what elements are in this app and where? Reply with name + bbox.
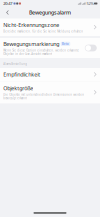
staticText: Empfindlichkeit	[3, 71, 40, 78]
button[interactable]: Nicht-Erkennungszone	[0, 18, 100, 36]
button[interactable]: Empfindlichkeit	[0, 68, 100, 81]
staticText: Nicht-Erkennungszone	[3, 21, 59, 28]
staticText: Die Objekte mit unterschiedlichen Dimens…	[3, 93, 84, 100]
button[interactable]: Objektgröße	[0, 81, 100, 103]
button[interactable]: Bewegungsmarkierung	[0, 38, 100, 58]
staticText: 20:47	[3, 1, 12, 6]
staticText: Bereiche markieren, für die Sie keine Me…	[3, 30, 83, 33]
staticText: Objektgröße	[3, 85, 33, 92]
staticText: 52%	[86, 1, 93, 6]
button[interactable]: Zurück	[2, 7, 13, 18]
staticText: Bewegungsmarkierung	[3, 40, 59, 47]
staticText: Beta	[62, 42, 69, 46]
staticText: Alarm-Einstellung	[3, 62, 27, 66]
staticText: Wenn Sie diese Option einschalten, werde…	[3, 49, 79, 56]
staticText: Bewegungsalarm	[29, 9, 71, 16]
